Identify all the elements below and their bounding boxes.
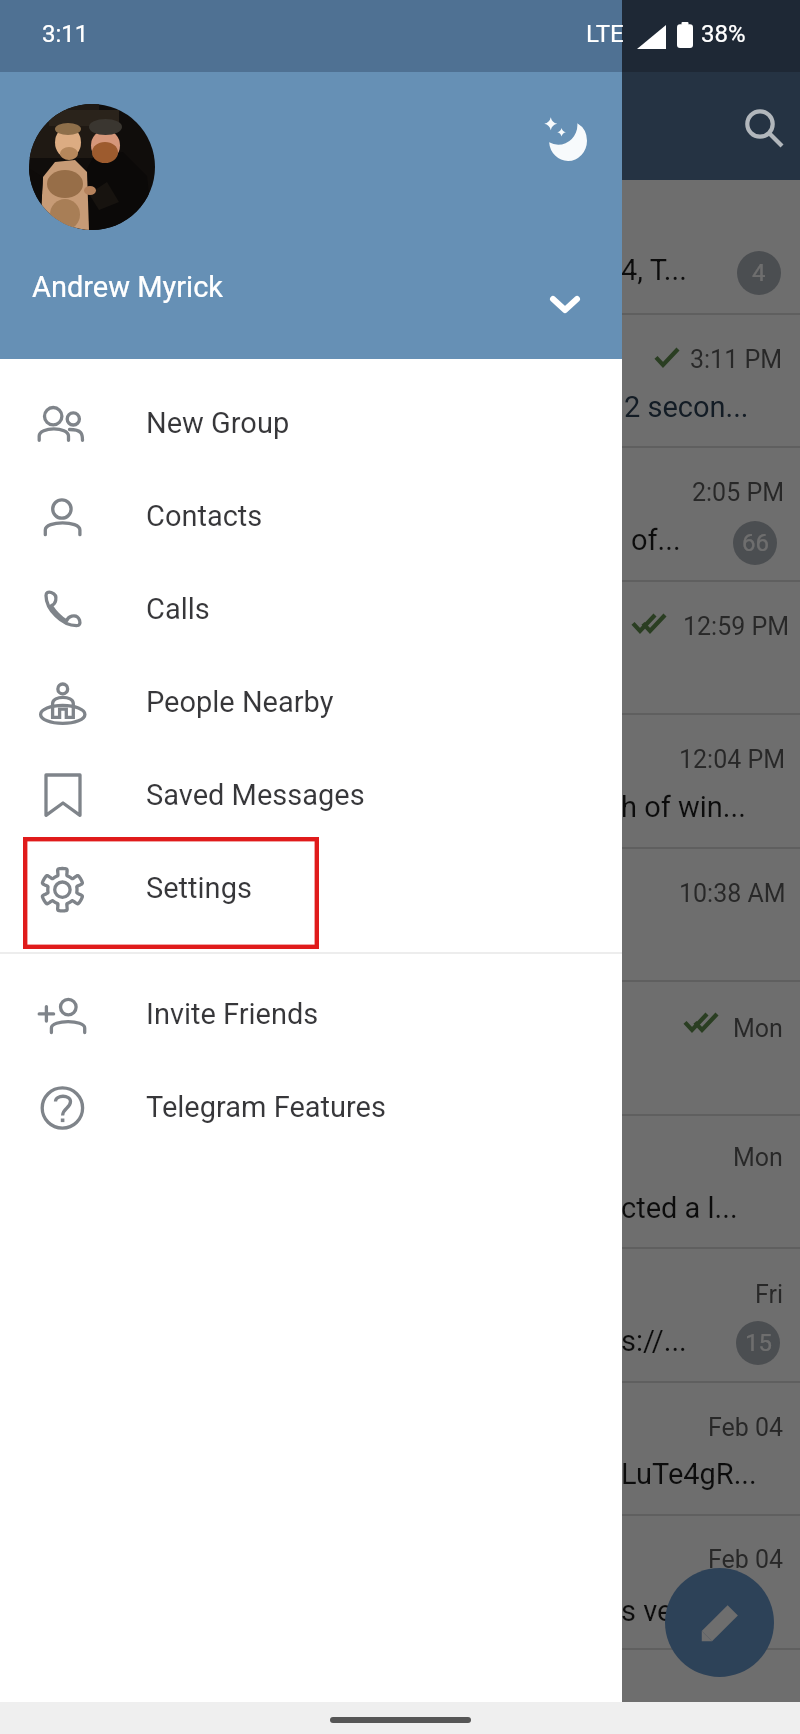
staticText: Invite Friends [146, 997, 319, 1031]
staticText: 3:11 PM [690, 345, 783, 374]
button[interactable]: Settings [0, 841, 622, 934]
staticText: Contacts [146, 499, 263, 533]
button[interactable]: New Group [0, 376, 622, 469]
staticText: 12:04 PM [679, 745, 786, 774]
staticText: People Nearby [146, 685, 334, 719]
staticText: Mon [733, 1014, 783, 1043]
button[interactable]: Saved Messages [0, 748, 622, 841]
staticText: Feb 04 [708, 1413, 784, 1442]
staticText: 10:38 AM [679, 879, 786, 908]
staticText: Feb 04 [708, 1545, 784, 1574]
staticText: 3:11 [42, 20, 89, 48]
staticText: 15 [745, 1329, 772, 1357]
staticText: cted a l... [621, 1191, 738, 1225]
staticText: 4, T... [621, 253, 687, 287]
staticText: 4 [752, 259, 766, 287]
staticText: 2 secon... [624, 390, 749, 424]
staticText: 66 [742, 529, 769, 557]
staticText: 2:05 PM [692, 478, 785, 507]
button[interactable]: Telegram Features [0, 1060, 622, 1153]
staticText: Settings [146, 871, 252, 905]
staticText: Fri [755, 1280, 784, 1309]
button[interactable]: Profile photo [29, 104, 155, 230]
staticText: New Group [146, 406, 290, 440]
staticText: Mon [733, 1143, 783, 1172]
button[interactable]: Night mode [528, 102, 598, 172]
staticText: Saved Messages [146, 778, 365, 812]
staticText: Calls [146, 592, 210, 626]
staticText: LTE [586, 20, 624, 48]
staticText: s://... [621, 1324, 687, 1358]
button[interactable]: New message [665, 1568, 774, 1677]
staticText: 38% [701, 20, 746, 48]
button[interactable]: Invite Friends [0, 967, 622, 1060]
staticText: h of win... [621, 790, 746, 824]
staticText: of... [631, 523, 681, 557]
staticText: LuTe4gR... [621, 1457, 757, 1491]
button[interactable]: Search [732, 96, 800, 170]
button[interactable]: Expand accounts [530, 269, 600, 339]
button[interactable]: Contacts [0, 469, 622, 562]
staticText: s ve [621, 1594, 673, 1628]
staticText: Telegram Features [146, 1090, 386, 1124]
staticText: Andrew Myrick [32, 270, 224, 304]
button[interactable]: Calls [0, 562, 622, 655]
staticText: 12:59 PM [683, 612, 790, 641]
button[interactable]: People Nearby [0, 655, 622, 748]
